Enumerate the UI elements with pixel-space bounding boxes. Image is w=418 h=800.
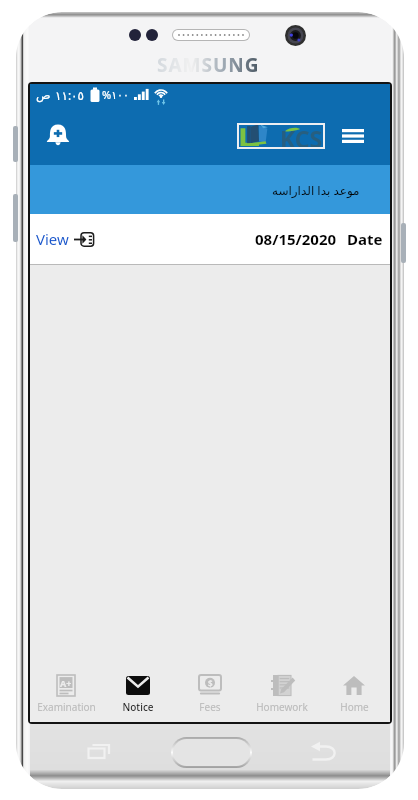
staticText: Home xyxy=(340,700,369,714)
staticText: Fees xyxy=(199,700,221,714)
staticText: ص xyxy=(36,88,51,102)
staticText: Examination xyxy=(37,700,96,714)
button[interactable]: Add notification xyxy=(41,118,75,152)
staticText: ١١:٠٥ xyxy=(55,87,84,103)
staticText: $ xyxy=(208,678,213,689)
staticText: Notice xyxy=(122,700,154,714)
button[interactable]: Home xyxy=(171,737,252,768)
button[interactable]: View xyxy=(30,214,390,264)
button[interactable]: Homework xyxy=(246,666,318,722)
button[interactable]: $ xyxy=(174,666,246,722)
button[interactable]: Recent apps xyxy=(88,744,110,759)
button[interactable]: A+ xyxy=(30,666,102,722)
button[interactable]: Notice xyxy=(102,666,174,722)
button[interactable]: Menu xyxy=(337,120,369,152)
staticText: KCS xyxy=(280,123,323,149)
staticText: 08/15/2020 xyxy=(255,229,337,249)
staticText: A+ xyxy=(60,677,72,689)
staticText: View xyxy=(36,229,69,249)
staticText: SAMSUNG xyxy=(157,52,260,78)
button[interactable]: Home xyxy=(318,666,390,722)
staticText: موعد بدا الداراسه xyxy=(272,182,360,198)
button[interactable]: KCS logo xyxy=(237,123,325,149)
button[interactable]: Back xyxy=(311,744,335,761)
staticText: %١٠٠ xyxy=(102,87,129,102)
staticText: Date xyxy=(347,229,383,249)
staticText: Homework xyxy=(256,700,308,714)
